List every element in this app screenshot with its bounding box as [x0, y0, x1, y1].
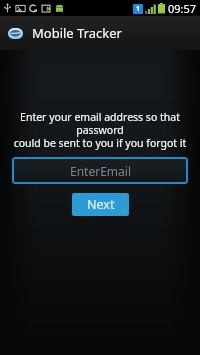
- staticText: 1: [136, 4, 141, 14]
- staticText: Enter your email address so that passwor…: [6, 110, 194, 150]
- staticText: Next: [87, 196, 115, 213]
- button[interactable]: Next: [72, 193, 129, 216]
- staticText: EnterEmail: [70, 163, 131, 179]
- staticText: 09:57: [168, 1, 197, 16]
- button[interactable]: EnterEmail: [12, 157, 188, 184]
- staticText: Mobile Tracker: [32, 24, 122, 42]
